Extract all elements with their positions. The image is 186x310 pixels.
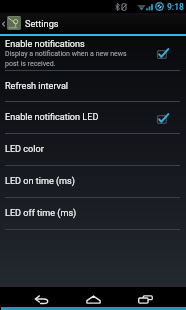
staticText: 9:18 bbox=[167, 2, 184, 12]
button[interactable]: Enable notification LED bbox=[0, 102, 186, 133]
staticText: Enable notifications bbox=[5, 39, 85, 50]
button[interactable]: Refresh interval bbox=[0, 71, 186, 101]
staticText: LED off time (ms) bbox=[5, 208, 77, 219]
staticText: Enable notification LED bbox=[5, 112, 99, 123]
button[interactable]: Back bbox=[26, 291, 56, 307]
staticText: LED on time (ms) bbox=[5, 176, 75, 187]
button[interactable]: Recent apps bbox=[130, 291, 160, 307]
button[interactable]: Settings bbox=[0, 13, 186, 34]
button[interactable]: LED on time (ms) bbox=[0, 166, 186, 197]
staticText: LED color bbox=[5, 144, 44, 155]
button[interactable]: LED color bbox=[0, 134, 186, 165]
button[interactable]: LED off time (ms) bbox=[0, 198, 186, 229]
button[interactable]: Enable notifications bbox=[0, 36, 186, 70]
button[interactable]: Toggle setting bbox=[156, 47, 169, 59]
button[interactable]: Toggle setting bbox=[156, 112, 169, 124]
staticText: Display a notification when a new news p… bbox=[5, 50, 127, 67]
staticText: Settings bbox=[25, 18, 59, 29]
staticText: Refresh interval bbox=[5, 81, 69, 92]
button[interactable]: Home bbox=[78, 291, 108, 307]
